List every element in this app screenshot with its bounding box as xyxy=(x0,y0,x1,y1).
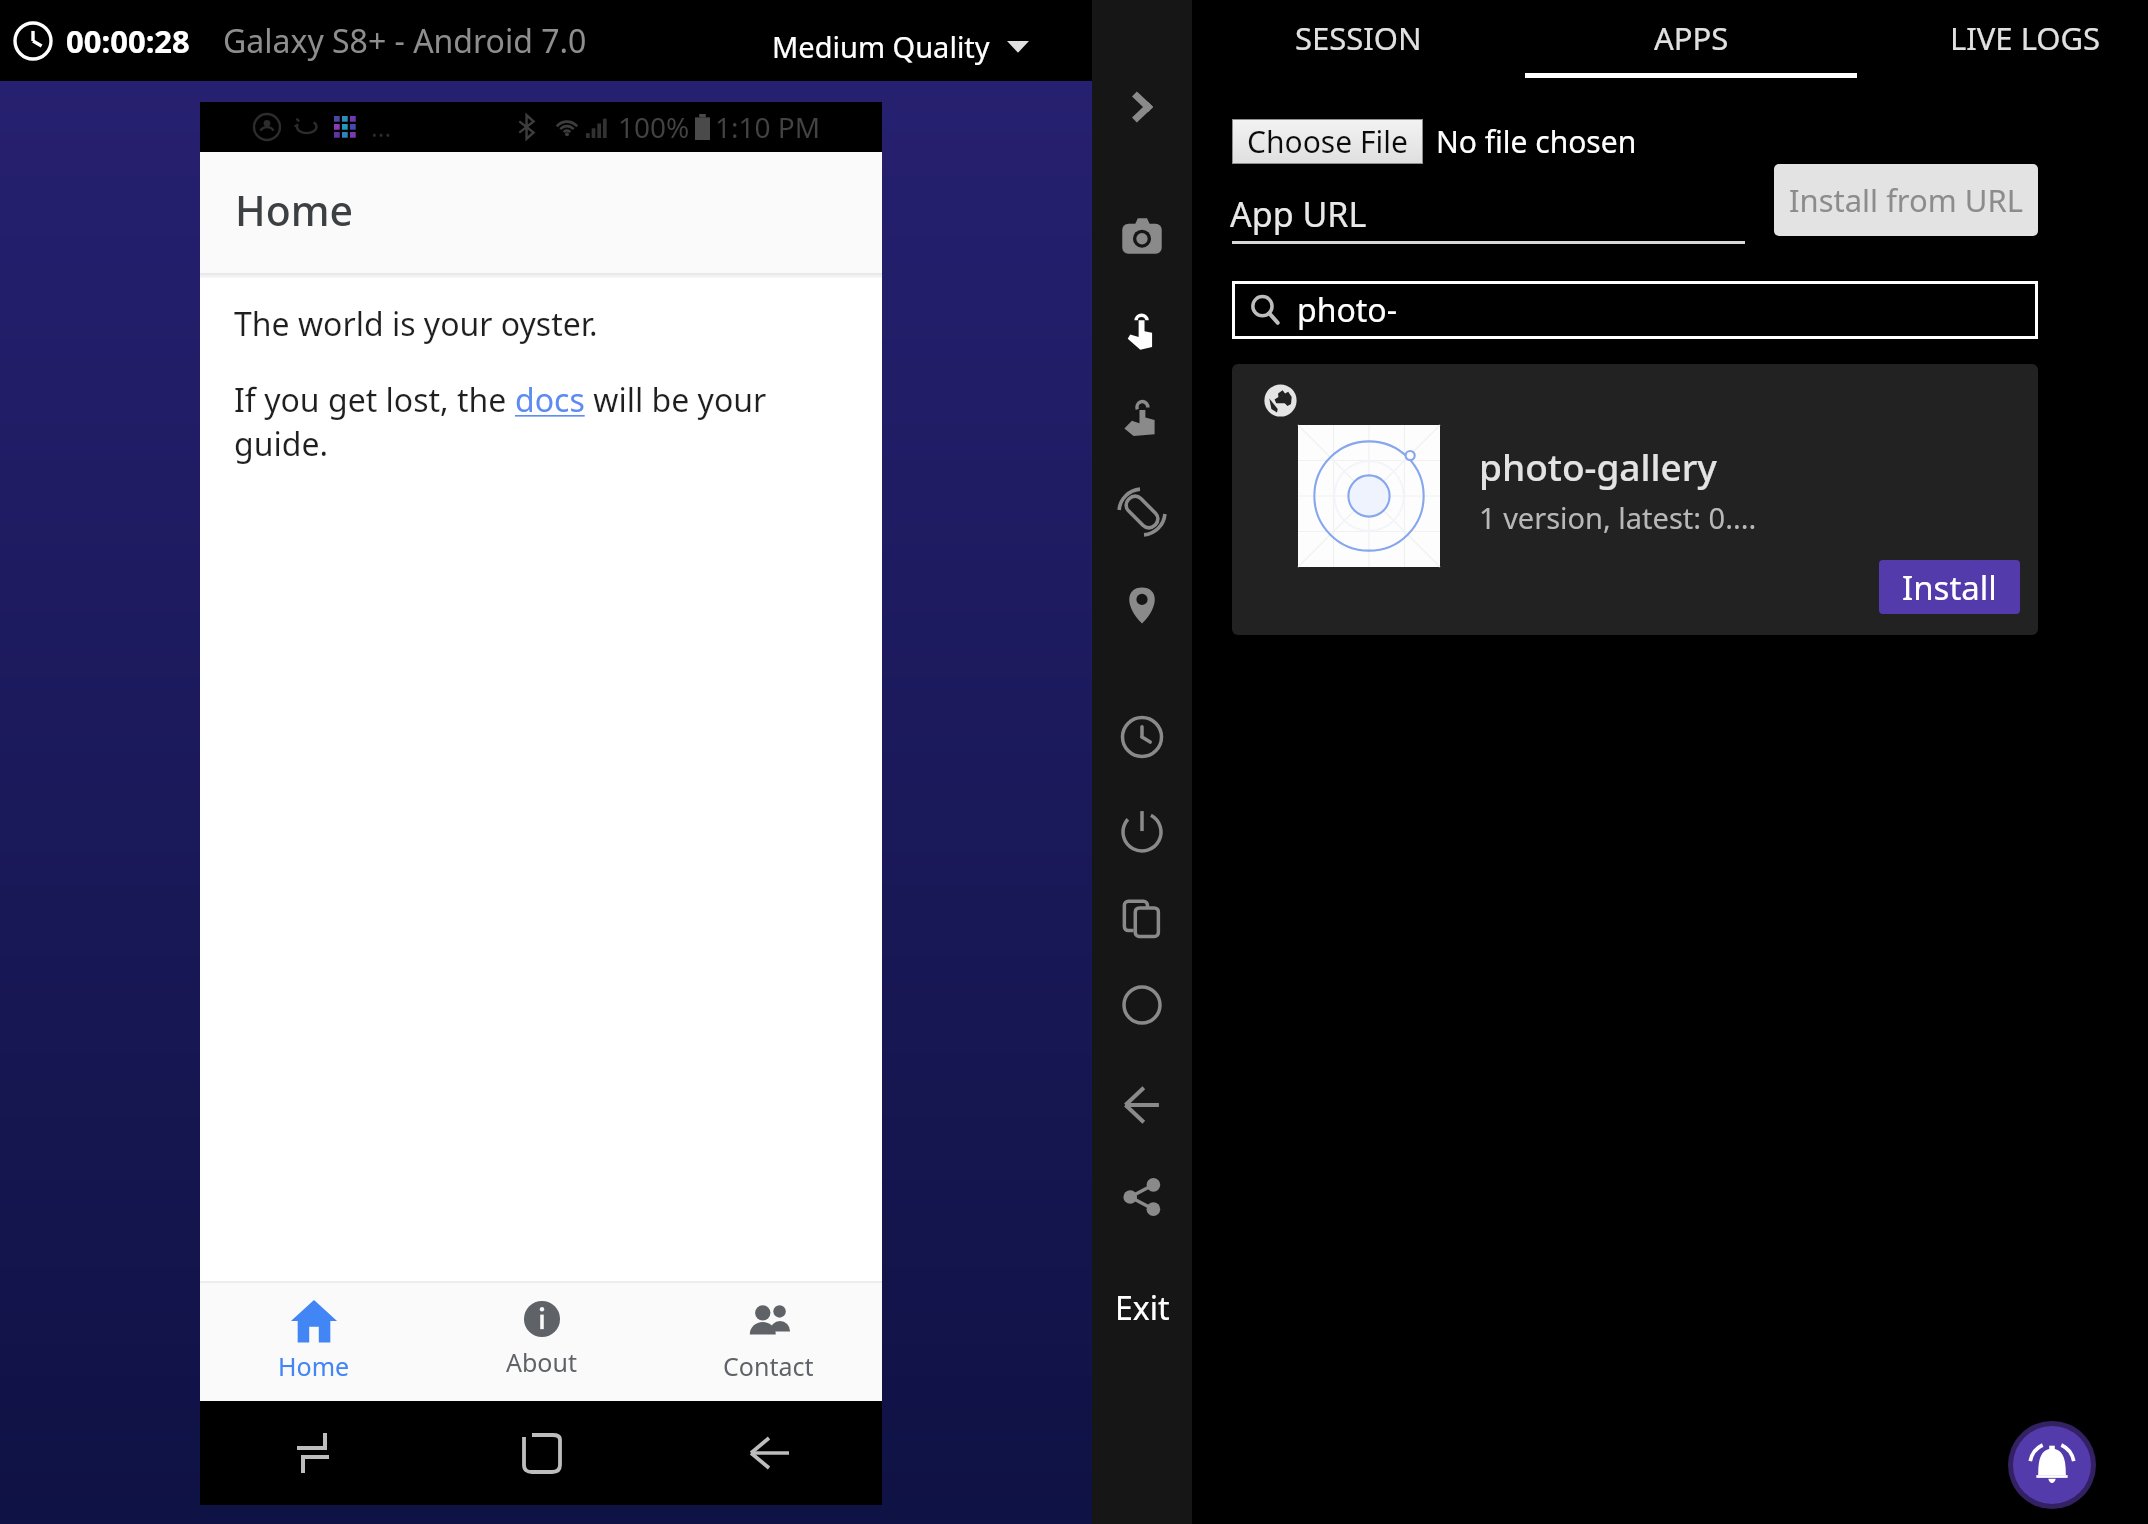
button[interactable]: History xyxy=(1114,709,1170,765)
button[interactable]: Home xyxy=(1114,977,1170,1033)
button[interactable]: Expand xyxy=(1114,79,1170,135)
staticText: Exit xyxy=(1115,1286,1170,1330)
staticText: About xyxy=(506,1345,577,1379)
button[interactable]: Back xyxy=(655,1401,882,1505)
button[interactable]: Install from URL xyxy=(1774,164,2038,236)
staticText: SESSION xyxy=(1295,17,1422,59)
button[interactable]: Swipe xyxy=(1114,392,1170,448)
staticText: The world is your oyster. xyxy=(234,302,598,346)
staticText: ... xyxy=(371,110,392,144)
button[interactable]: Share xyxy=(1114,1169,1170,1225)
staticText: Home xyxy=(235,182,354,238)
button[interactable]: photo- xyxy=(1232,281,2038,339)
button[interactable]: Power xyxy=(1114,804,1170,860)
staticText: App URL xyxy=(1230,191,1367,237)
button[interactable]: Exit xyxy=(1105,1276,1180,1340)
button[interactable]: About xyxy=(428,1283,655,1401)
button[interactable]: Recents xyxy=(200,1401,428,1505)
staticText: No file chosen xyxy=(1436,121,1637,162)
staticText: 1 version, latest: 0.... xyxy=(1479,498,1757,537)
staticText: will be your xyxy=(585,378,767,422)
button[interactable]: APPS xyxy=(1525,0,1858,80)
button[interactable]: photo-gallery xyxy=(1232,364,2038,635)
button[interactable]: Copy xyxy=(1114,890,1170,946)
staticText: Contact xyxy=(723,1349,814,1383)
button[interactable]: Home xyxy=(428,1401,655,1505)
staticText: photo-gallery xyxy=(1479,441,1717,491)
staticText: 100% xyxy=(618,108,690,146)
staticText: guide. xyxy=(234,422,329,466)
button[interactable]: Medium Quality xyxy=(772,27,1029,66)
button[interactable]: docs xyxy=(515,378,585,422)
staticText: Choose File xyxy=(1247,121,1408,162)
staticText: Install from URL xyxy=(1789,179,2023,221)
button[interactable]: Screenshot xyxy=(1114,208,1170,264)
staticText: 00:00:28 xyxy=(66,20,190,62)
button[interactable]: Choose File xyxy=(1232,119,1423,164)
button[interactable]: Contact xyxy=(655,1283,882,1401)
staticText: APPS xyxy=(1654,17,1729,59)
button[interactable]: Notifications xyxy=(2008,1421,2096,1509)
staticText: LIVE LOGS xyxy=(1950,17,2101,59)
button[interactable]: Home xyxy=(200,1283,428,1401)
staticText: Medium Quality xyxy=(772,27,990,66)
button[interactable]: Install xyxy=(1879,560,2020,614)
button[interactable]: Tap xyxy=(1114,304,1170,360)
button[interactable]: Back xyxy=(1114,1077,1170,1133)
staticText: Galaxy S8+ - Android 7.0 xyxy=(223,19,587,63)
button[interactable]: Rotate xyxy=(1114,484,1170,540)
staticText: photo- xyxy=(1297,288,1398,332)
button[interactable]: SESSION xyxy=(1192,0,1525,80)
button[interactable]: Location xyxy=(1114,577,1170,633)
staticText: If you get lost, the xyxy=(234,378,515,422)
staticText: 1:10 PM xyxy=(715,108,821,146)
staticText: Home xyxy=(278,1349,350,1383)
staticText: Install xyxy=(1902,565,1997,610)
button[interactable]: LIVE LOGS xyxy=(1859,0,2148,80)
